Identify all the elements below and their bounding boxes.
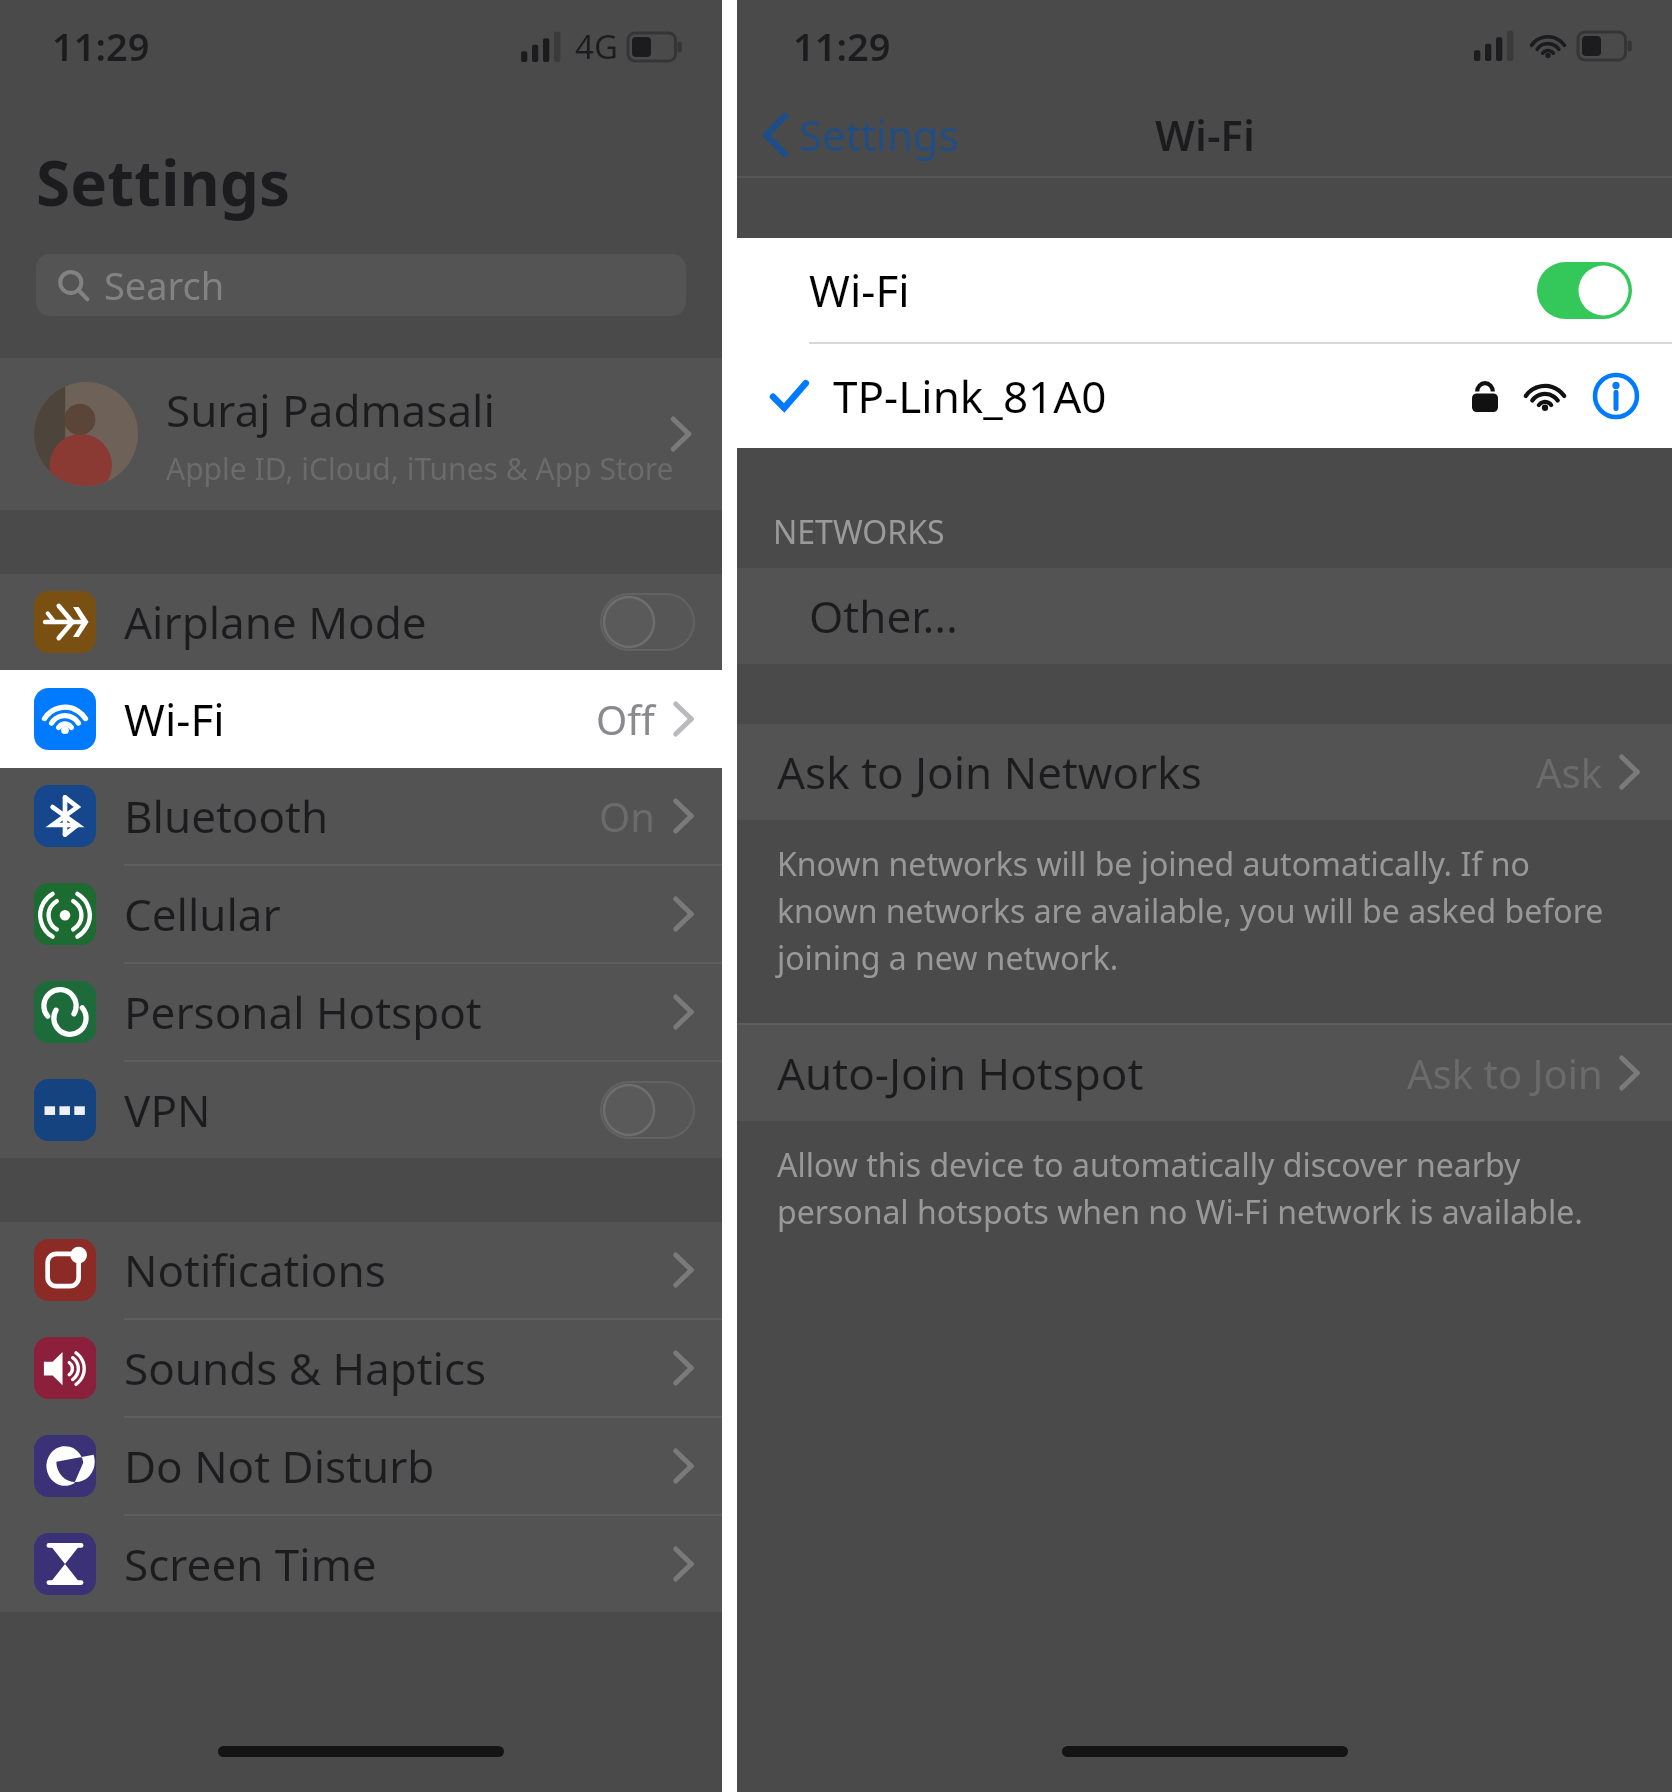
staticText: Settings [799, 106, 959, 163]
button[interactable]: Sounds & Haptics [0, 1320, 722, 1416]
staticText: Ask to Join Networks [777, 742, 1202, 802]
staticText: TP-Link_81A0 [833, 366, 1107, 426]
staticText: Screen Time [124, 1534, 377, 1594]
staticText: VPN [124, 1080, 211, 1140]
staticText: Notifications [124, 1240, 386, 1300]
button[interactable]: Airplane Mode [0, 574, 722, 670]
button[interactable]: Auto-Join Hotspot [737, 1025, 1672, 1121]
button[interactable]: Wi-Fi [0, 670, 722, 768]
staticText: Allow this device to automatically disco… [777, 1143, 1638, 1233]
staticText: Ask to Join [1407, 1046, 1603, 1100]
button[interactable]: Cellular [0, 866, 722, 962]
staticText: Apple ID, iCloud, iTunes & App Store [166, 448, 674, 489]
button[interactable]: VPN [0, 1062, 722, 1158]
button[interactable]: Notifications [0, 1222, 722, 1318]
button[interactable]: Suraj Padmasali [0, 358, 722, 510]
button[interactable]: Search [36, 254, 686, 316]
staticText: Sounds & Haptics [124, 1338, 487, 1398]
staticText: Suraj Padmasali [166, 380, 495, 440]
staticText: Search [104, 259, 225, 311]
button[interactable]: Personal Hotspot [0, 964, 722, 1060]
staticText: Do Not Disturb [124, 1436, 435, 1496]
button[interactable]: Ask to Join Networks [737, 724, 1672, 820]
staticText: Airplane Mode [124, 592, 427, 652]
staticText: Personal Hotspot [124, 982, 482, 1042]
button[interactable]: Settings [763, 106, 959, 163]
button[interactable]: Other... [737, 568, 1672, 664]
staticText: Known networks will be joined automatica… [777, 842, 1638, 979]
staticText: Ask [1536, 745, 1603, 799]
staticText: Settings [36, 140, 291, 224]
button[interactable]: Network info [1592, 372, 1640, 420]
staticText: Cellular [124, 884, 281, 944]
button[interactable]: Do Not Disturb [0, 1418, 722, 1514]
staticText: Wi-Fi [809, 260, 910, 320]
staticText: Auto-Join Hotspot [777, 1043, 1144, 1103]
staticText: Other... [809, 586, 958, 646]
staticText: Bluetooth [124, 786, 329, 846]
button[interactable]: Bluetooth [0, 768, 722, 864]
staticText: Off [596, 692, 655, 746]
button[interactable]: Wi-Fi [737, 238, 1672, 342]
button[interactable]: Screen Time [0, 1516, 722, 1612]
staticText: Wi-Fi [1155, 106, 1255, 163]
staticText: 11:29 [793, 20, 891, 72]
button[interactable]: TP-Link_81A0 [737, 344, 1672, 448]
staticText: 4G [575, 24, 618, 69]
staticText: On [599, 789, 655, 843]
staticText: 11:29 [52, 20, 150, 72]
staticText: Wi-Fi [124, 689, 225, 749]
staticText: NETWORKS [773, 510, 945, 554]
